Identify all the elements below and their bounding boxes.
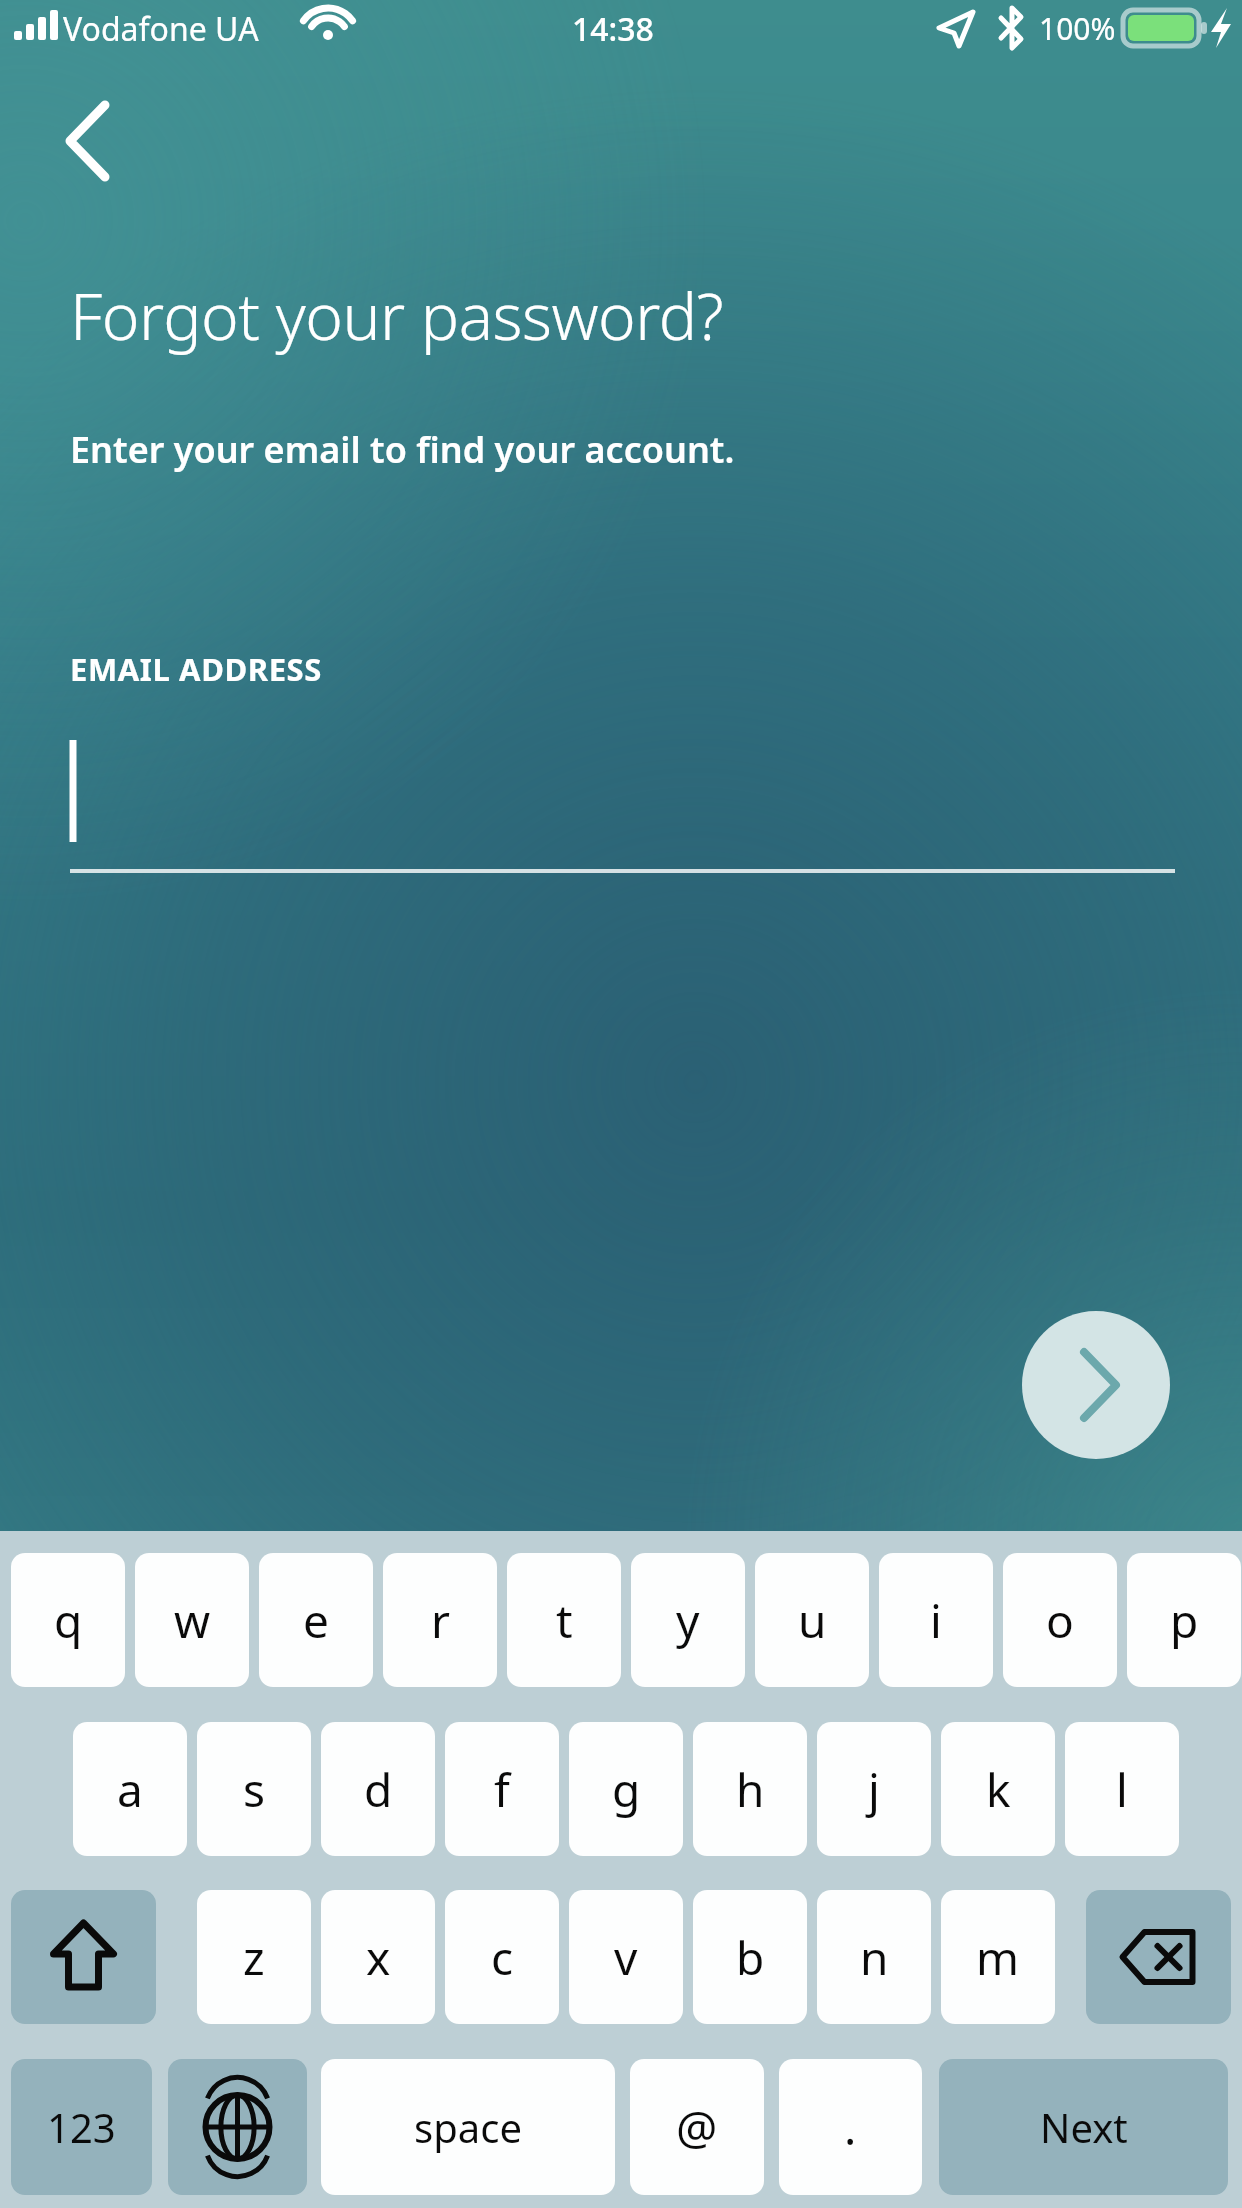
- button[interactable]: space: [321, 2059, 615, 2195]
- button[interactable]: e: [259, 1553, 373, 1687]
- button[interactable]: Next: [939, 2059, 1228, 2195]
- staticText: @: [676, 2096, 718, 2159]
- button[interactable]: c: [445, 1890, 559, 2024]
- button[interactable]: f: [445, 1722, 559, 1856]
- staticText: 14:38: [572, 7, 654, 51]
- staticText: Enter your email to find your account.: [70, 425, 735, 474]
- staticText: Vodafone UA: [63, 7, 259, 51]
- staticText: q: [54, 1589, 83, 1652]
- staticText: u: [798, 1589, 827, 1652]
- button[interactable]: d: [321, 1722, 435, 1856]
- staticText: b: [736, 1926, 765, 1989]
- staticText: z: [243, 1926, 265, 1989]
- button[interactable]: n: [817, 1890, 931, 2024]
- button[interactable]: s: [197, 1722, 311, 1856]
- staticText: d: [364, 1758, 393, 1821]
- button[interactable]: Backspace: [1086, 1890, 1231, 2024]
- button[interactable]: m: [941, 1890, 1055, 2024]
- staticText: l: [1116, 1758, 1128, 1821]
- staticText: e: [303, 1589, 329, 1652]
- staticText: n: [860, 1926, 889, 1989]
- staticText: space: [414, 2100, 522, 2154]
- button[interactable]: Next: [1022, 1311, 1170, 1459]
- staticText: Next: [1040, 2100, 1128, 2154]
- button[interactable]: y: [631, 1553, 745, 1687]
- button[interactable]: i: [879, 1553, 993, 1687]
- button[interactable]: k: [941, 1722, 1055, 1856]
- staticText: c: [491, 1926, 514, 1989]
- staticText: o: [1046, 1589, 1074, 1652]
- button[interactable]: 123: [11, 2059, 152, 2195]
- button[interactable]: b: [693, 1890, 807, 2024]
- button[interactable]: w: [135, 1553, 249, 1687]
- button[interactable]: Shift: [11, 1890, 156, 2024]
- button[interactable]: Back: [34, 78, 134, 178]
- staticText: f: [494, 1758, 510, 1821]
- button[interactable]: r: [383, 1553, 497, 1687]
- button[interactable]: q: [11, 1553, 125, 1687]
- button[interactable]: a: [73, 1722, 187, 1856]
- staticText: y: [676, 1589, 700, 1652]
- staticText: w: [174, 1589, 211, 1652]
- button[interactable]: o: [1003, 1553, 1117, 1687]
- staticText: p: [1170, 1589, 1199, 1652]
- staticText: EMAIL ADDRESS: [70, 648, 322, 690]
- button[interactable]: @: [630, 2059, 764, 2195]
- staticText: v: [614, 1926, 638, 1989]
- staticText: 100%: [1039, 8, 1116, 49]
- staticText: 123: [47, 2100, 116, 2154]
- staticText: k: [986, 1758, 1011, 1821]
- button[interactable]: l: [1065, 1722, 1179, 1856]
- button[interactable]: t: [507, 1553, 621, 1687]
- staticText: s: [243, 1758, 266, 1821]
- staticText: t: [556, 1589, 573, 1652]
- staticText: m: [976, 1926, 1020, 1989]
- button[interactable]: x: [321, 1890, 435, 2024]
- staticText: h: [736, 1758, 765, 1821]
- button[interactable]: p: [1127, 1553, 1241, 1687]
- button[interactable]: .: [779, 2059, 922, 2195]
- button[interactable]: h: [693, 1722, 807, 1856]
- staticText: a: [117, 1758, 143, 1821]
- staticText: r: [431, 1589, 450, 1652]
- staticText: .: [844, 2096, 857, 2159]
- button[interactable]: j: [817, 1722, 931, 1856]
- staticText: Forgot your password?: [70, 272, 724, 359]
- button[interactable]: u: [755, 1553, 869, 1687]
- button[interactable]: Email address input: [70, 720, 1175, 875]
- staticText: g: [612, 1758, 641, 1821]
- staticText: i: [930, 1589, 942, 1652]
- button[interactable]: v: [569, 1890, 683, 2024]
- staticText: j: [868, 1758, 880, 1821]
- button[interactable]: g: [569, 1722, 683, 1856]
- staticText: x: [366, 1926, 391, 1989]
- button[interactable]: Change keyboard: [168, 2059, 307, 2195]
- button[interactable]: z: [197, 1890, 311, 2024]
